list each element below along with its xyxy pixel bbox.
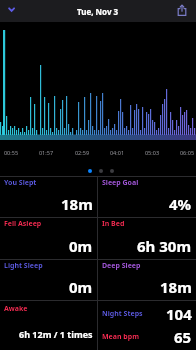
staticText: 05:03 (140, 149, 164, 156)
staticText: 4% (169, 194, 192, 214)
button[interactable] (170, 0, 194, 22)
staticText: 6h 12m / 1 times (19, 328, 93, 340)
staticText: Deep Sleep (102, 261, 141, 271)
staticText: Sleep Goal (102, 178, 139, 188)
staticText: 65 (174, 327, 192, 347)
staticText: 104 (166, 304, 192, 324)
staticText: 06:05 (175, 149, 196, 156)
staticText: 00:55 (0, 149, 23, 156)
button[interactable]: In Bed (98, 218, 196, 259)
button[interactable] (99, 169, 103, 173)
button[interactable]: Light Sleep (0, 260, 97, 300)
button[interactable]: Night Steps (98, 301, 196, 350)
staticText: Night Steps (102, 309, 143, 319)
staticText: 6h 30m (137, 236, 192, 256)
staticText: In Bed (102, 219, 125, 229)
staticText: 0m (69, 236, 93, 256)
button[interactable]: Deep Sleep (98, 260, 196, 300)
button[interactable]: You Slept (0, 177, 97, 217)
staticText: 0m (69, 277, 93, 297)
staticText: 02:59 (70, 149, 94, 156)
button[interactable] (88, 169, 92, 173)
staticText: You Slept (4, 178, 37, 188)
staticText: Light Sleep (4, 261, 43, 271)
staticText: 04:01 (105, 149, 129, 156)
staticText: 18m (61, 194, 93, 214)
staticText: 01:57 (34, 149, 58, 156)
button[interactable]: Sleep Goal (98, 177, 196, 217)
staticText: 18m (160, 277, 192, 297)
staticText: Mean bpm (102, 332, 140, 342)
staticText: Fell Asleep (4, 219, 42, 229)
button[interactable]: Awake (0, 301, 97, 350)
staticText: Tue, Nov 3 (77, 6, 119, 17)
button[interactable] (110, 169, 114, 173)
button[interactable] (0, 0, 22, 22)
button[interactable]: Fell Asleep (0, 218, 97, 259)
staticText: Awake (4, 304, 28, 314)
